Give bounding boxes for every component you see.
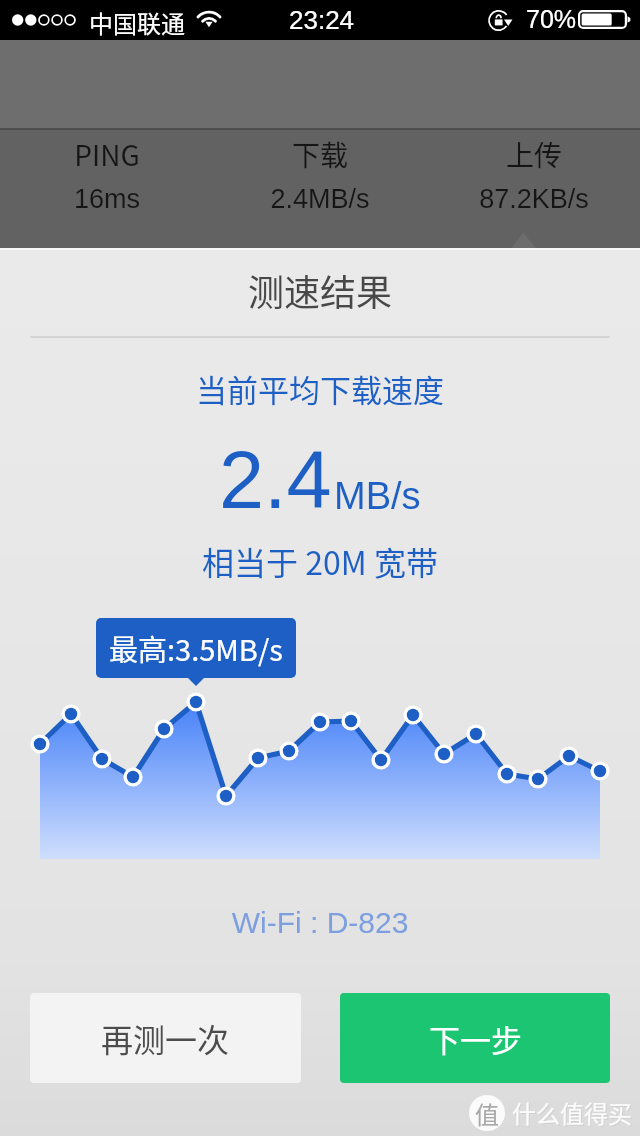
staticText: 2.4MB/s xyxy=(120,184,520,214)
staticText: 测速结果 xyxy=(120,264,520,316)
staticText: 什么值得买 xyxy=(512,1095,632,1130)
button[interactable]: 下一步 xyxy=(340,993,610,1083)
staticText: PING xyxy=(0,134,307,175)
staticText: 最高:3.5MB/s xyxy=(109,627,283,669)
staticText: 下载 xyxy=(120,134,520,175)
staticText: 中国联通 xyxy=(89,5,185,40)
staticText: 70% xyxy=(526,5,577,33)
staticText: 再测一次 xyxy=(101,1015,230,1061)
staticText: 87.2KB/s xyxy=(334,184,640,214)
staticText: 23:24 xyxy=(289,5,355,34)
staticText: 相当于 20M 宽带 xyxy=(120,538,520,584)
staticText: 当前平均下载速度 xyxy=(120,366,520,411)
staticText: Wi-Fi : D-823 xyxy=(120,906,520,940)
staticText: 16ms xyxy=(0,184,307,214)
other: Rotation lock xyxy=(489,10,510,31)
button[interactable]: 再测一次 xyxy=(30,993,301,1083)
staticText: 下一步 xyxy=(429,1016,522,1061)
staticText: MB/s xyxy=(334,475,421,517)
staticText: 值 xyxy=(475,1096,499,1131)
staticText: 上传 xyxy=(334,134,640,175)
staticText: 什么值得买 xyxy=(513,1096,633,1131)
staticText: 2.4 xyxy=(219,435,332,525)
